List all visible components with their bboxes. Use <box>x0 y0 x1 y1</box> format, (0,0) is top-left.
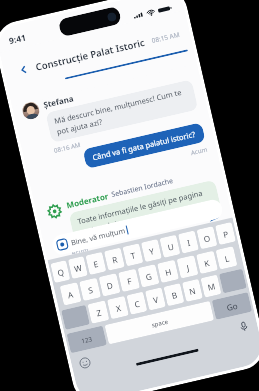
staticText: A <box>67 288 75 300</box>
button[interactable]: Când va fi gata palatul istoric? <box>82 122 206 169</box>
staticText: X <box>115 302 122 314</box>
button[interactable]: J <box>176 255 198 279</box>
button[interactable]: Back <box>12 58 36 82</box>
staticText: S <box>87 284 94 296</box>
staticText: T <box>129 249 137 261</box>
button[interactable]: W <box>68 256 88 279</box>
staticText: Y <box>148 245 155 257</box>
button[interactable]: T <box>122 243 143 266</box>
staticText: D <box>105 279 114 291</box>
button[interactable]: P <box>215 222 236 245</box>
staticText: Toate informațiile le găsiți pe pagina p… <box>76 186 214 237</box>
staticText: U <box>166 241 175 253</box>
button[interactable]: H <box>157 260 179 283</box>
staticText: W <box>73 262 83 274</box>
staticText: Când va fi gata palatul istoric? <box>91 129 197 162</box>
staticText: G <box>144 270 153 282</box>
staticText: R <box>111 253 119 266</box>
button[interactable]: C <box>126 292 147 315</box>
button[interactable]: Microphone <box>237 320 250 333</box>
button[interactable]: F <box>118 269 140 292</box>
button[interactable]: B <box>163 283 184 306</box>
staticText: O <box>202 232 212 244</box>
button[interactable]: M <box>200 274 221 298</box>
button[interactable]: N <box>182 279 203 302</box>
staticText: N <box>188 285 197 297</box>
staticText: Ștefana <box>42 92 75 110</box>
staticText: 08:15 AM <box>151 30 181 45</box>
staticText: V <box>152 293 159 305</box>
staticText: Q <box>56 266 66 278</box>
button[interactable]: Moderator badge <box>44 201 64 221</box>
staticText: Go <box>225 300 239 313</box>
button[interactable]: Bine, vă mulțum <box>50 198 224 256</box>
staticText: I <box>186 237 191 248</box>
staticText: 9:41 <box>8 31 27 47</box>
staticText: Acum <box>70 245 89 255</box>
button[interactable]: Backspace <box>219 269 247 293</box>
button[interactable]: Z <box>87 300 109 324</box>
button[interactable]: space <box>104 301 214 345</box>
button[interactable]: Go <box>212 292 252 320</box>
button[interactable]: Send <box>205 214 224 224</box>
button[interactable]: S <box>79 278 101 301</box>
button[interactable]: Mă descurc bine, mulțumesc! Cum te pot a… <box>45 79 198 143</box>
staticText: F <box>126 275 133 287</box>
staticText: P <box>222 228 229 240</box>
staticText: Acum <box>190 144 208 156</box>
button[interactable]: L <box>215 246 237 270</box>
button[interactable]: V <box>145 287 166 311</box>
staticText: J <box>185 262 191 273</box>
button[interactable]: R <box>104 247 125 271</box>
staticText: B <box>170 289 179 301</box>
button[interactable]: U <box>159 235 180 258</box>
staticText: K <box>203 257 211 269</box>
button[interactable]: A <box>60 282 82 306</box>
staticText: E <box>92 258 100 270</box>
staticText: Sebastien Iordache <box>110 176 175 200</box>
button[interactable]: Emoji <box>78 356 92 369</box>
button[interactable]: G <box>137 264 159 288</box>
button[interactable]: O <box>196 226 217 249</box>
button[interactable]: X <box>107 296 129 319</box>
staticText: 123 <box>80 334 93 345</box>
staticText: space <box>151 317 169 328</box>
staticText: M <box>206 280 217 293</box>
staticText: C <box>133 297 142 310</box>
button[interactable]: E <box>85 252 106 275</box>
button[interactable]: 123 <box>66 325 107 353</box>
staticText: 08:16 AM <box>53 140 81 154</box>
button[interactable]: Toate informațiile le găsiți pe pagina p… <box>68 180 221 243</box>
button[interactable]: Q <box>50 260 70 283</box>
staticText: Mă descurc bine, mulțumesc! Cum te pot a… <box>53 86 190 137</box>
button[interactable]: Y <box>141 239 162 262</box>
staticText: H <box>164 266 173 278</box>
staticText: Moderator <box>65 190 110 210</box>
button[interactable]: Shift <box>61 305 90 330</box>
button[interactable]: D <box>99 273 121 297</box>
staticText: L <box>223 252 231 264</box>
staticText: Construcție Palat Istoric <box>34 34 153 74</box>
button[interactable]: K <box>196 251 218 274</box>
staticText: Bine, vă mulțum <box>70 225 127 247</box>
button[interactable]: I <box>178 230 199 254</box>
staticText: Z <box>95 306 103 318</box>
button[interactable]: Ștefana avatar <box>21 100 41 121</box>
